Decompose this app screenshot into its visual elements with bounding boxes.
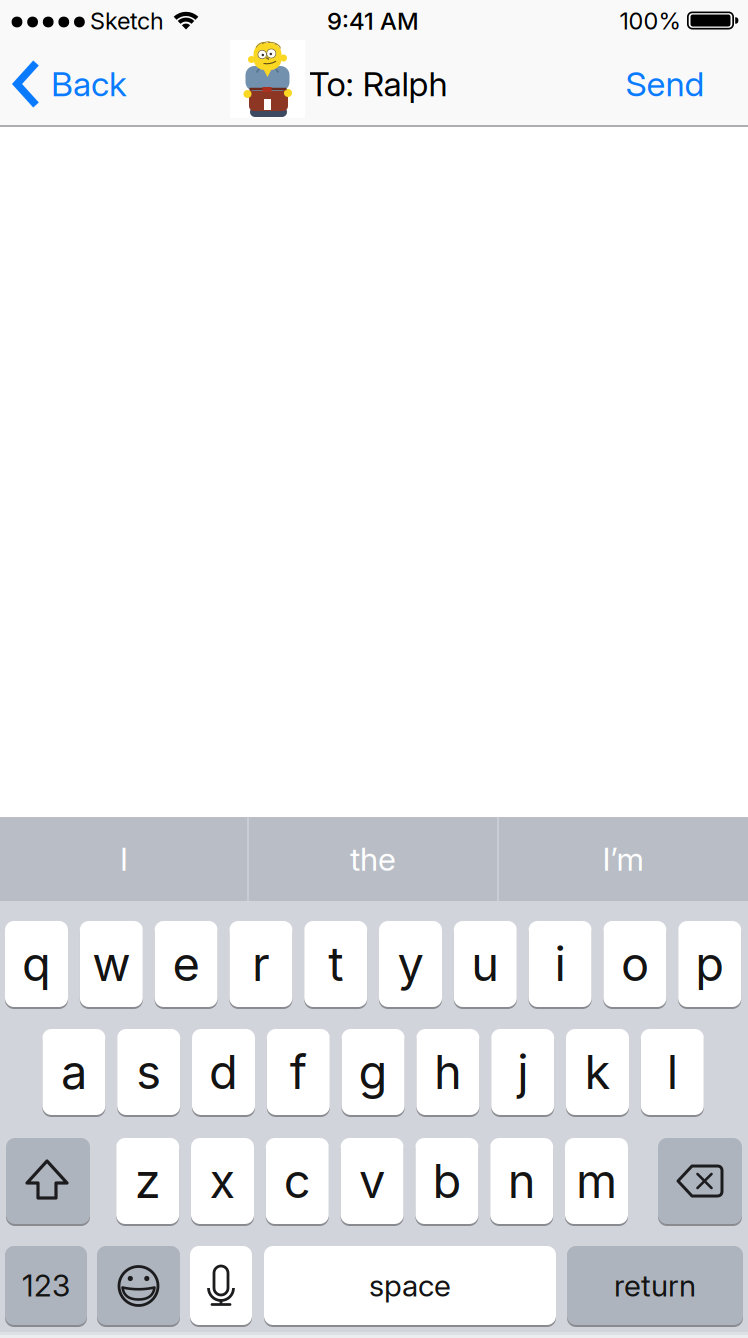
staticText: g <box>359 1044 388 1100</box>
staticText: s <box>136 1044 161 1100</box>
button[interactable]: g <box>342 1029 405 1117</box>
button[interactable]: d <box>192 1029 255 1117</box>
button[interactable]: Shift <box>6 1138 90 1226</box>
button[interactable]: p <box>678 921 741 1009</box>
staticText: a <box>61 1044 87 1100</box>
staticText: m <box>576 1153 617 1209</box>
button[interactable]: l <box>641 1029 704 1117</box>
staticText: x <box>209 1153 235 1209</box>
button[interactable]: k <box>566 1029 629 1117</box>
button[interactable]: I <box>4 817 244 901</box>
staticText: y <box>397 936 423 992</box>
staticText: c <box>284 1153 311 1209</box>
button[interactable]: Send <box>605 44 725 124</box>
staticText: q <box>22 936 51 992</box>
staticText: v <box>359 1153 385 1209</box>
button[interactable]: c <box>266 1138 329 1226</box>
staticText: k <box>584 1044 610 1100</box>
button[interactable]: return <box>567 1246 743 1327</box>
button[interactable]: s <box>117 1029 180 1117</box>
staticText: To: Ralph <box>308 63 447 104</box>
staticText: f <box>290 1044 307 1100</box>
button[interactable]: f <box>267 1029 330 1117</box>
staticText: n <box>508 1153 536 1209</box>
staticText: p <box>695 936 724 992</box>
button[interactable]: t <box>304 921 367 1009</box>
button[interactable]: o <box>603 921 666 1009</box>
staticText: z <box>135 1153 161 1209</box>
button[interactable]: I’m <box>501 817 745 901</box>
button[interactable]: j <box>491 1029 554 1117</box>
button[interactable]: q <box>5 921 68 1009</box>
button[interactable]: i <box>529 921 592 1009</box>
staticText: i <box>555 936 566 992</box>
staticText: r <box>252 936 270 992</box>
button[interactable]: v <box>341 1138 404 1226</box>
button[interactable]: Emoji <box>97 1246 180 1327</box>
staticText: the <box>350 840 396 878</box>
staticText: I <box>120 840 128 878</box>
staticText: b <box>432 1153 461 1209</box>
button[interactable]: m <box>565 1138 628 1226</box>
staticText: d <box>209 1044 238 1100</box>
button[interactable]: Dictate <box>190 1246 252 1327</box>
staticText: Send <box>625 63 704 104</box>
staticText: j <box>517 1044 528 1100</box>
button[interactable]: z <box>116 1138 179 1226</box>
button[interactable]: u <box>454 921 517 1009</box>
button[interactable]: space <box>264 1246 556 1327</box>
staticText: 9:41 AM <box>327 6 419 35</box>
staticText: Back <box>51 63 127 104</box>
staticText: e <box>173 936 200 992</box>
button[interactable]: x <box>191 1138 254 1226</box>
button[interactable]: w <box>80 921 143 1009</box>
staticText: t <box>328 936 343 992</box>
button[interactable]: a <box>42 1029 105 1117</box>
staticText: l <box>667 1044 678 1100</box>
staticText: u <box>471 936 499 992</box>
staticText: I’m <box>602 840 643 878</box>
button[interactable]: h <box>416 1029 479 1117</box>
button[interactable]: r <box>229 921 292 1009</box>
button[interactable]: e <box>155 921 218 1009</box>
staticText: return <box>614 1267 696 1304</box>
button[interactable]: Back <box>0 42 140 126</box>
staticText: o <box>621 936 649 992</box>
staticText: w <box>92 936 130 992</box>
button[interactable]: Delete <box>658 1138 742 1226</box>
button[interactable]: b <box>415 1138 478 1226</box>
staticText: Sketch <box>90 7 164 35</box>
button[interactable]: the <box>251 817 495 901</box>
staticText: 100% <box>619 7 680 35</box>
staticText: space <box>369 1267 451 1304</box>
button[interactable]: n <box>490 1138 553 1226</box>
staticText: 123 <box>22 1267 70 1304</box>
staticText: h <box>434 1044 462 1100</box>
button[interactable]: 123 <box>5 1246 87 1327</box>
button[interactable]: y <box>379 921 442 1009</box>
